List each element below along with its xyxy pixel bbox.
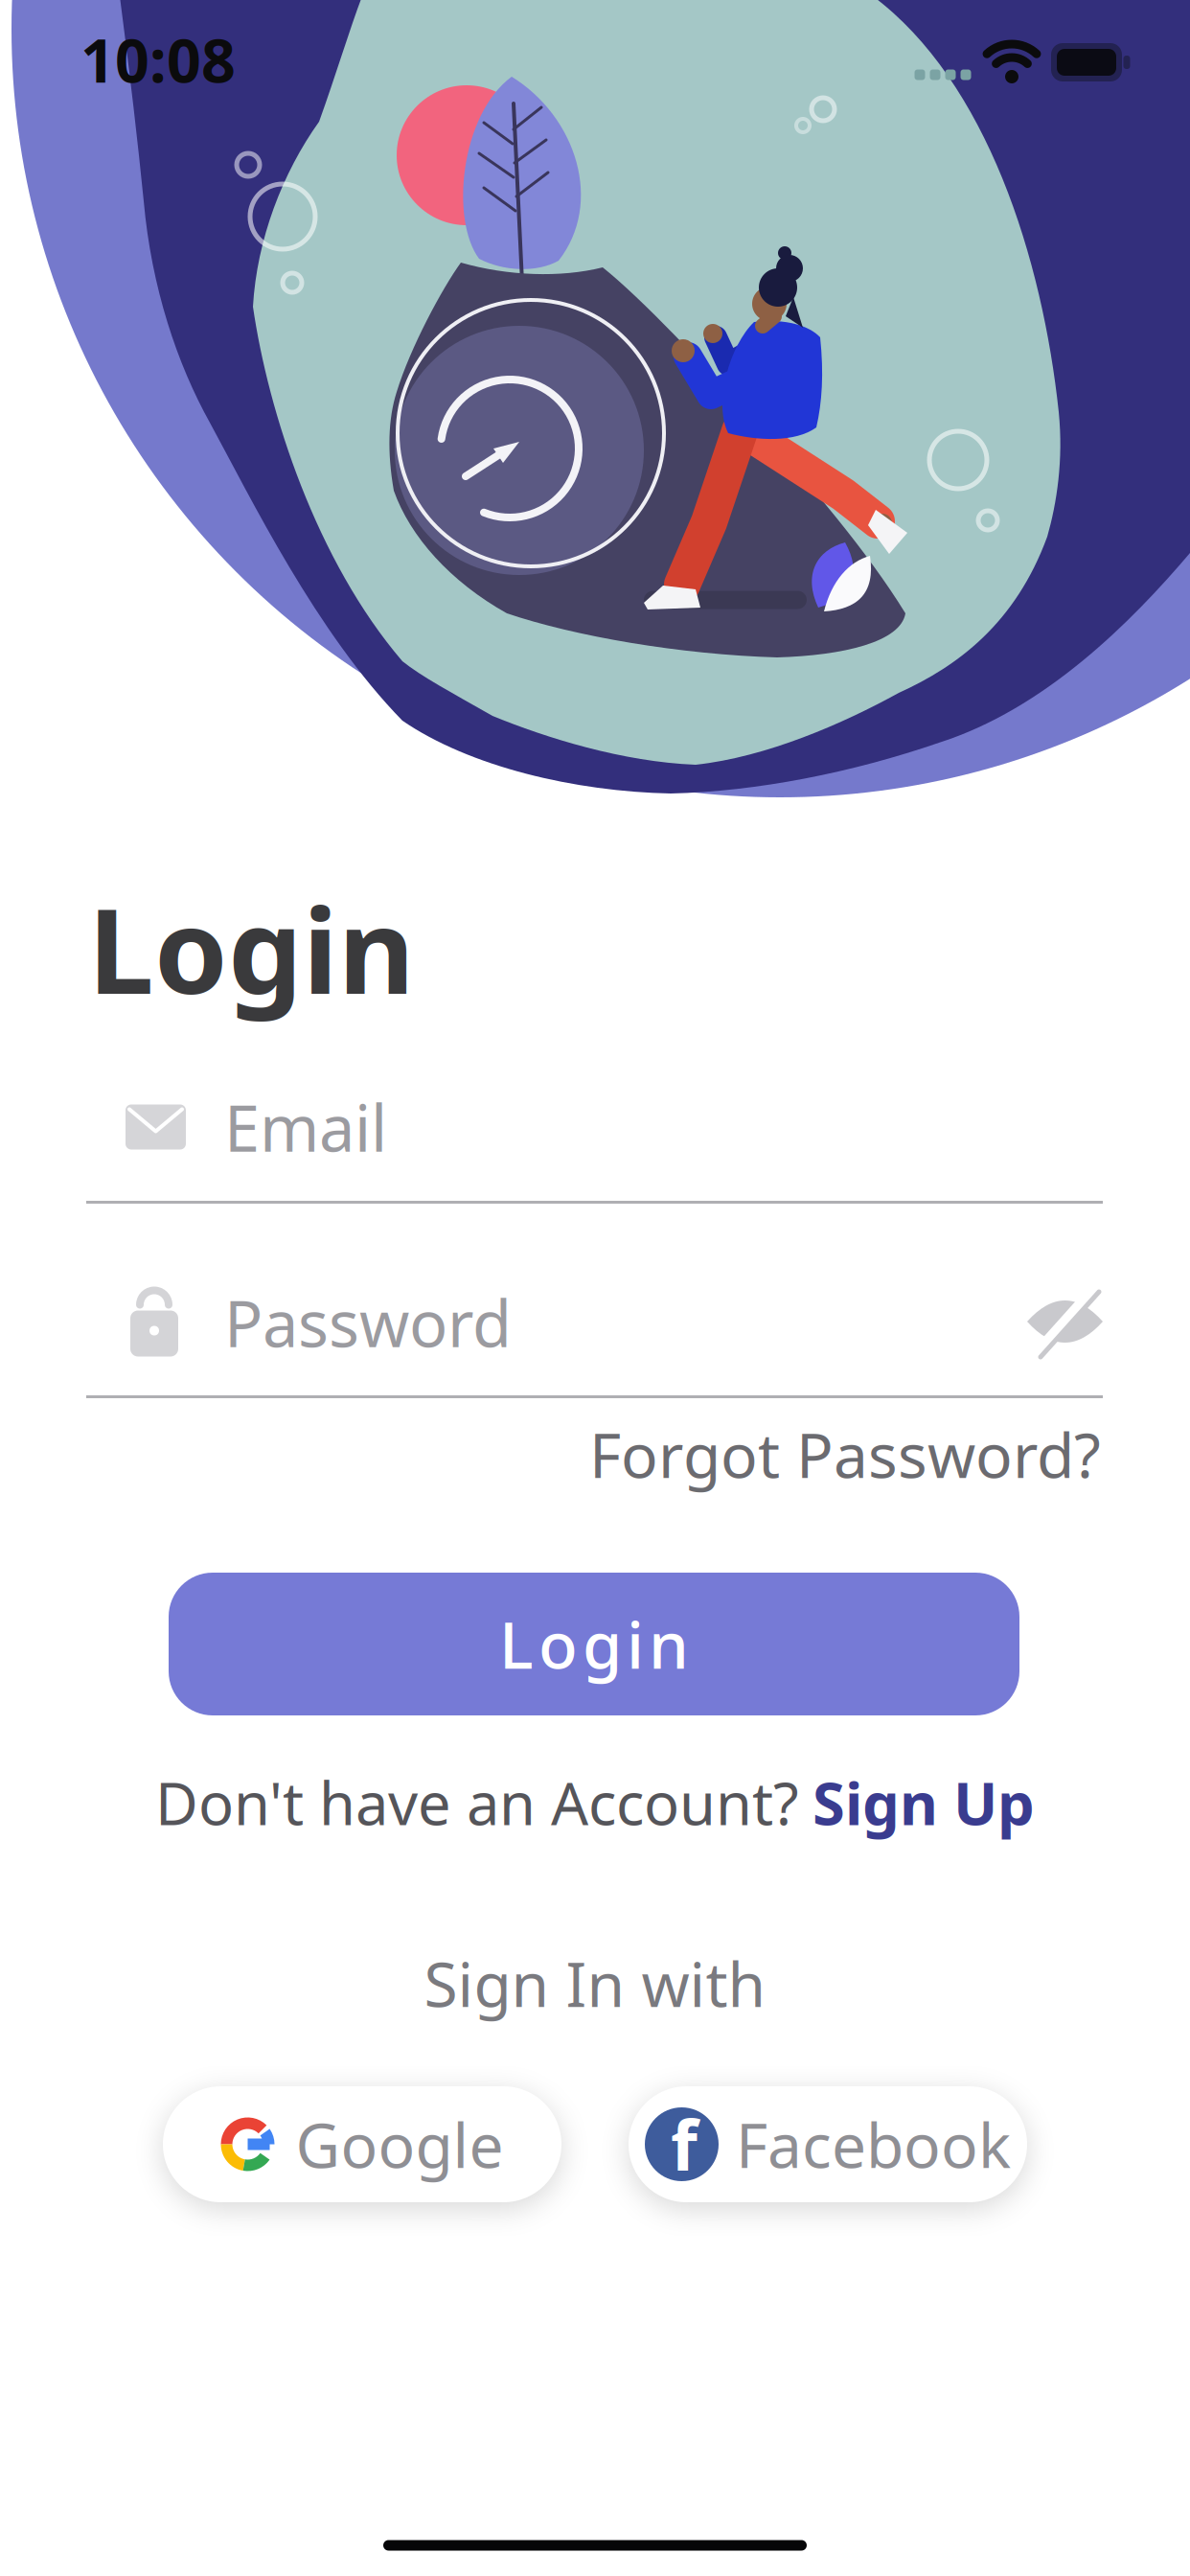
staticText: Forgot Password?	[589, 1414, 1101, 1495]
button[interactable]: Login	[169, 1573, 1019, 1715]
staticText: Login	[499, 1602, 689, 1686]
staticText: Google	[296, 2104, 503, 2185]
staticText: f	[671, 2098, 698, 2190]
staticText: Facebook	[736, 2104, 1011, 2185]
button[interactable]: Email	[126, 1074, 1142, 1180]
staticText: 10:08	[80, 20, 236, 99]
button[interactable]: Sign Up	[812, 1763, 1035, 1841]
staticText: Sign Up	[812, 1763, 1035, 1841]
button[interactable]: Show password	[1027, 1283, 1103, 1360]
staticText: Password	[224, 1280, 512, 1365]
staticText: Login	[88, 870, 415, 1026]
staticText: Sign In with	[424, 1943, 766, 2024]
button[interactable]: Google	[163, 2086, 561, 2202]
button[interactable]: f	[629, 2086, 1027, 2202]
staticText: Don't have an Account?	[155, 1763, 799, 1841]
staticText: Email	[224, 1085, 387, 1169]
button[interactable]: Forgot Password?	[589, 1414, 1101, 1495]
button[interactable]: Password	[130, 1270, 1012, 1375]
